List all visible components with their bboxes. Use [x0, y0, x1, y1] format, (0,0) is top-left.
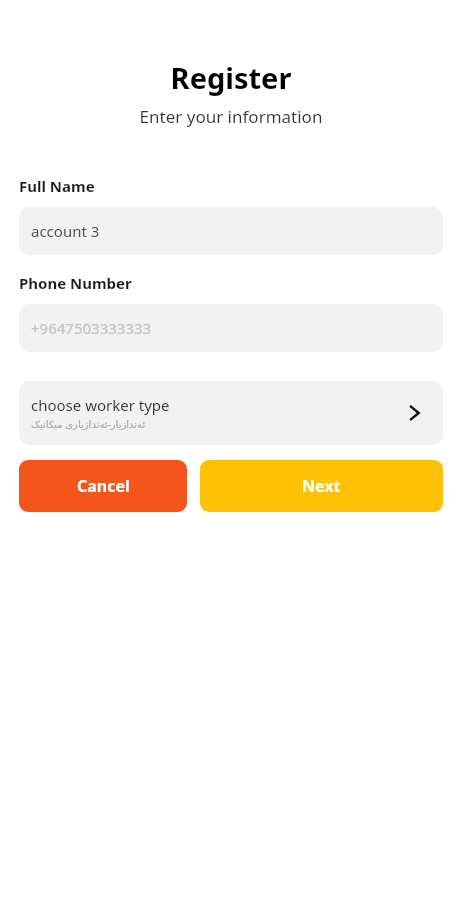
staticText: Enter your information [0, 105, 462, 128]
button[interactable]: +9647503333333 [19, 304, 443, 352]
staticText: Next [302, 475, 341, 497]
staticText: choose worker type [31, 395, 170, 415]
staticText: account 3 [31, 221, 100, 241]
staticText: Phone Number [19, 273, 132, 293]
button[interactable]: Cancel [19, 460, 187, 512]
button[interactable]: choose worker type [19, 381, 443, 445]
other: Choose worker type [401, 400, 427, 426]
button[interactable]: Next [200, 460, 443, 512]
staticText: Cancel [77, 475, 130, 497]
staticText: Full Name [19, 176, 95, 196]
staticText: ئەندازیار-ئەندازیاری میکانیک [31, 417, 146, 431]
staticText: +9647503333333 [31, 318, 152, 338]
staticText: Register [0, 58, 462, 97]
button[interactable]: account 3 [19, 207, 443, 255]
